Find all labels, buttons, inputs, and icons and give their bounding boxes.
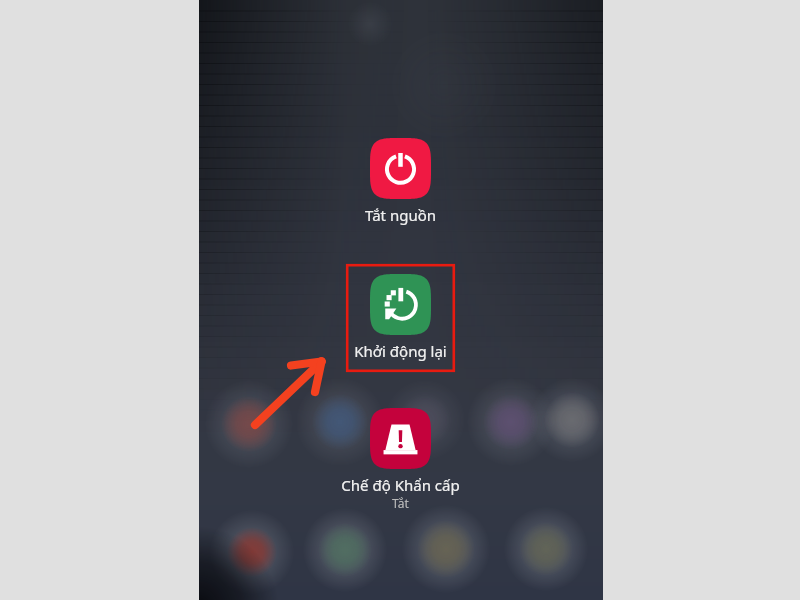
staticText: Khởi động lại: [354, 341, 447, 361]
button[interactable]: Tắt nguồn: [340, 138, 460, 225]
button[interactable]: Chế độ Khẩn cấp: [320, 408, 480, 511]
button[interactable]: Khởi động lại: [340, 274, 460, 361]
staticText: Tắt: [392, 495, 409, 511]
staticText: Chế độ Khẩn cấp: [341, 475, 460, 495]
staticText: Tắt nguồn: [365, 205, 436, 225]
